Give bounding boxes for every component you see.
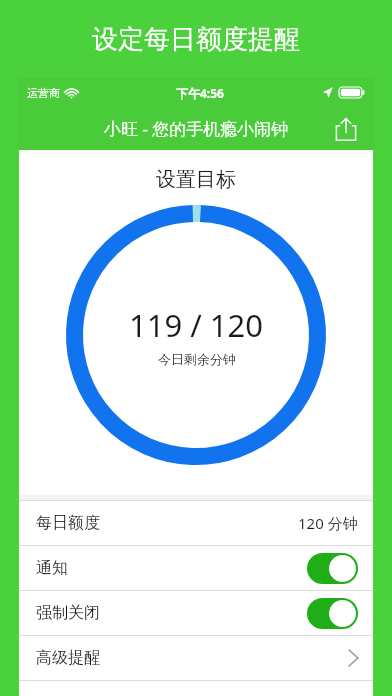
staticText: 高级提醒 (36, 648, 100, 668)
button[interactable]: 强制关闭 (19, 591, 373, 635)
button[interactable]: 高级提醒 (19, 636, 373, 680)
button[interactable]: Toggle on (307, 598, 358, 629)
staticText: 设置目标 (156, 167, 236, 192)
staticText: 下午4:56 (176, 85, 224, 101)
staticText: 今日剩余分钟 (158, 351, 236, 367)
staticText: 120 分钟 (298, 513, 358, 533)
staticText: 设定每日额度提醒 (92, 23, 300, 56)
staticText: 119 / 120 (129, 304, 264, 346)
button[interactable]: 通知 (19, 546, 373, 590)
button[interactable]: Share (329, 112, 363, 146)
staticText: 小旺 - 您的手机瘾小闹钟 (104, 117, 289, 140)
staticText: 通知 (36, 558, 68, 578)
button[interactable]: Toggle on (307, 553, 358, 584)
staticText: 每日额度 (36, 513, 100, 533)
staticText: 运营商 (27, 86, 60, 100)
button[interactable]: 每日额度 (19, 501, 373, 545)
staticText: 强制关闭 (36, 603, 100, 623)
